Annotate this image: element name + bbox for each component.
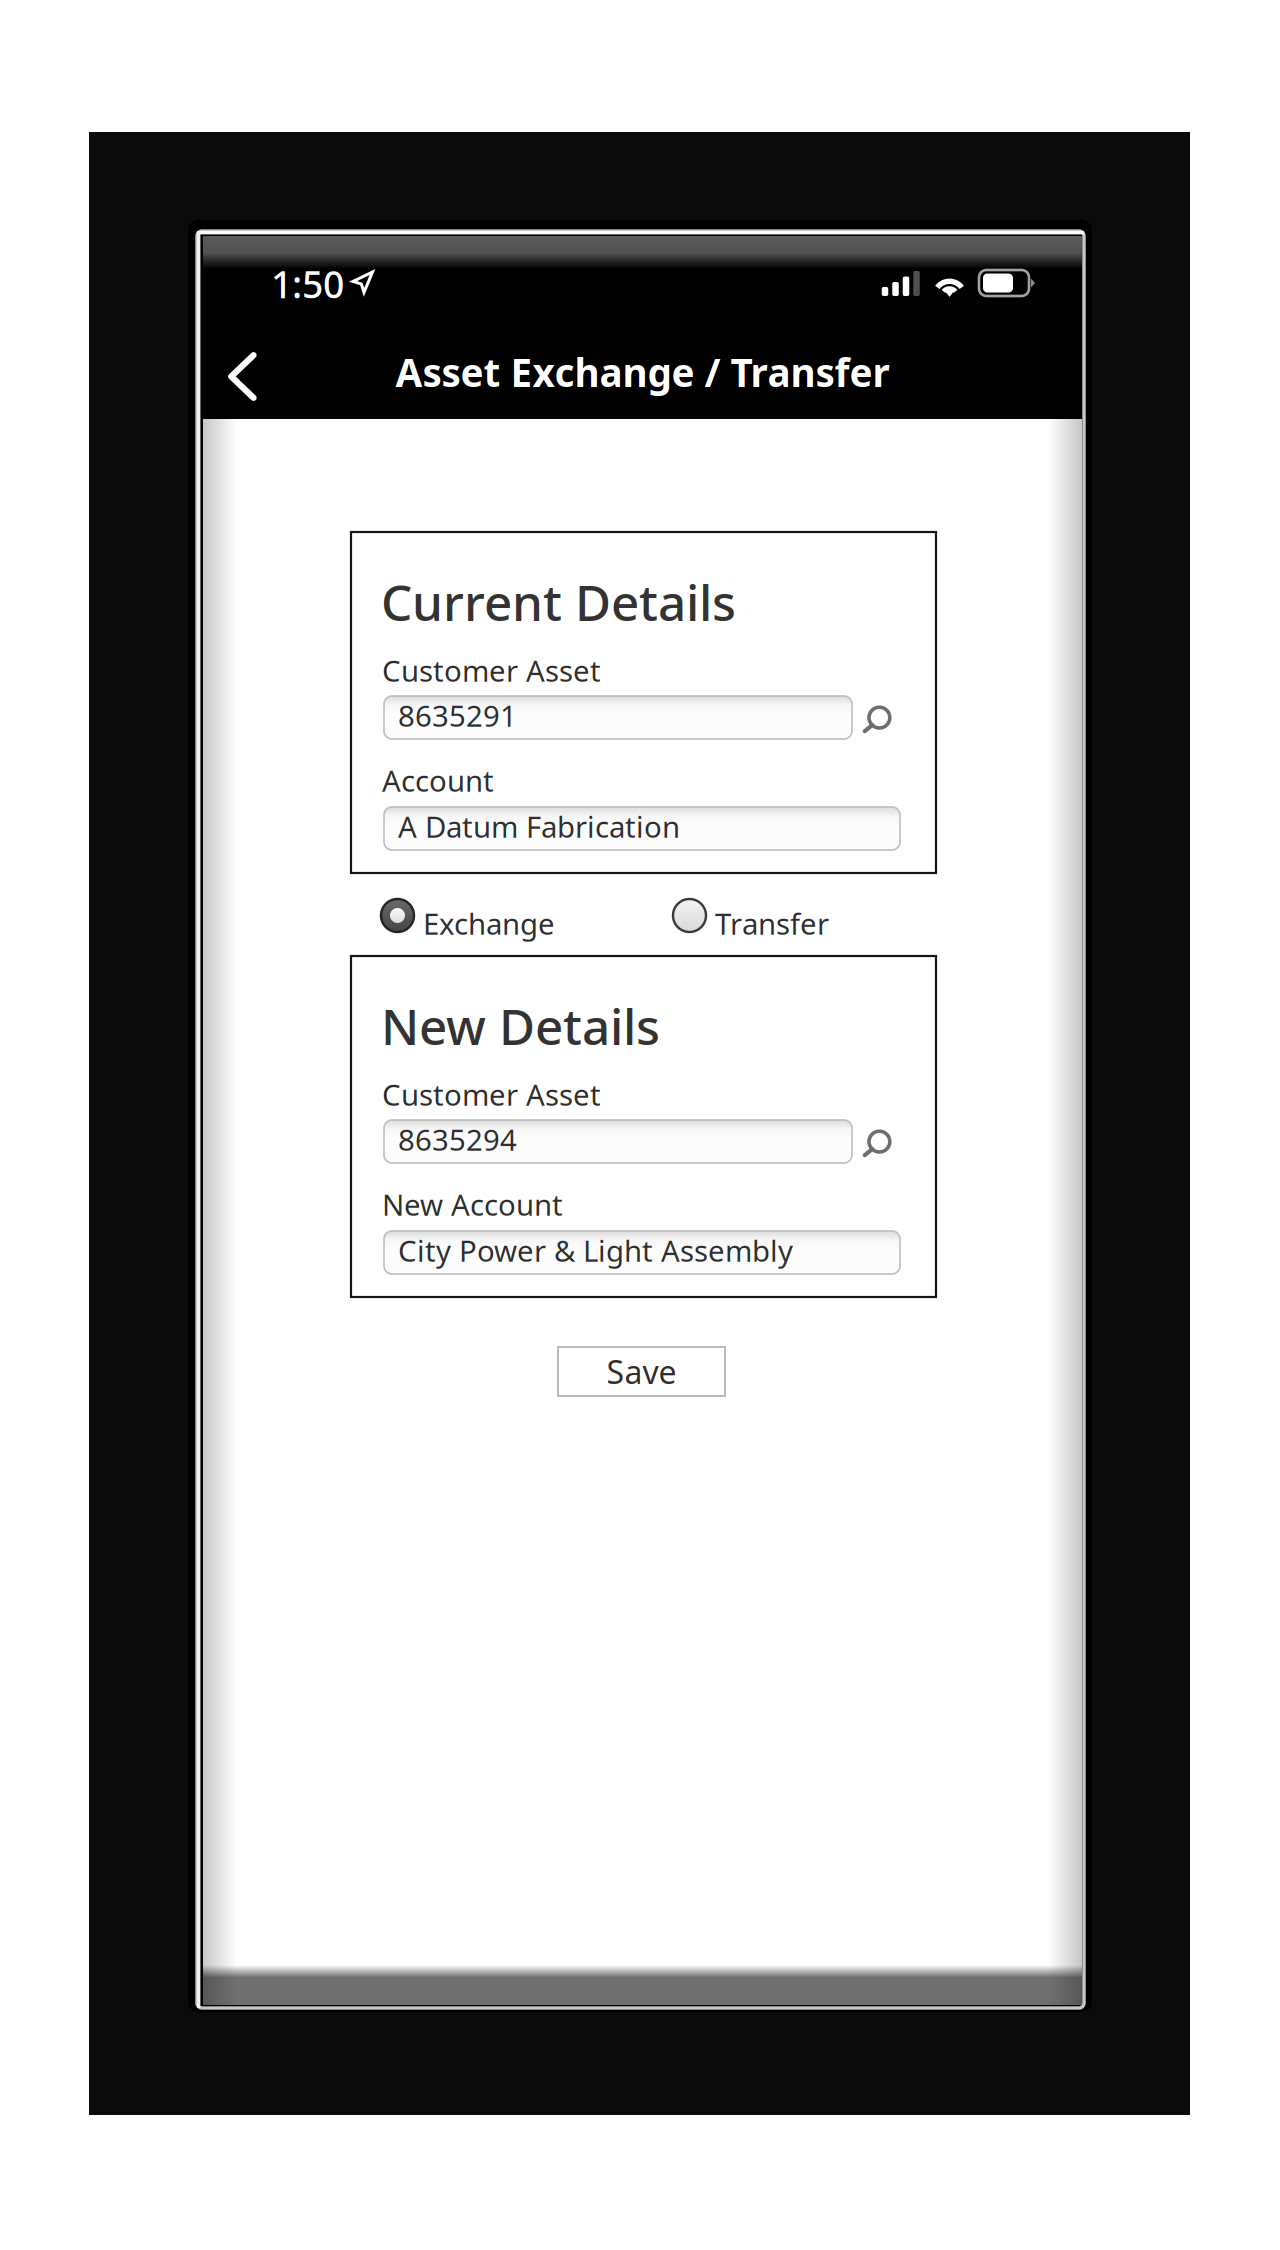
- button[interactable]: Transfer: [673, 898, 903, 934]
- staticText: City Power & Light Assembly: [398, 1231, 793, 1270]
- staticText: New Details: [381, 993, 660, 1058]
- staticText: 1:50: [271, 259, 344, 309]
- staticText: Asset Exchange / Transfer: [395, 346, 889, 398]
- staticText: A Datum Fabrication: [398, 807, 680, 846]
- staticText: Transfer: [715, 904, 829, 943]
- button[interactable]: Back: [203, 319, 283, 419]
- staticText: Current Details: [381, 569, 736, 634]
- staticText: Customer Asset: [382, 1075, 601, 1114]
- button[interactable]: Search: [853, 698, 899, 744]
- staticText: New Account: [382, 1185, 563, 1224]
- button[interactable]: Save: [558, 1347, 725, 1396]
- staticText: Save: [606, 1350, 676, 1393]
- staticText: 8635294: [398, 1120, 517, 1159]
- button[interactable]: Exchange: [381, 898, 631, 934]
- staticText: Account: [382, 761, 494, 800]
- staticText: 8635291: [398, 696, 517, 735]
- staticText: Customer Asset: [382, 651, 601, 690]
- button[interactable]: Search: [853, 1122, 899, 1168]
- staticText: Exchange: [423, 904, 555, 943]
